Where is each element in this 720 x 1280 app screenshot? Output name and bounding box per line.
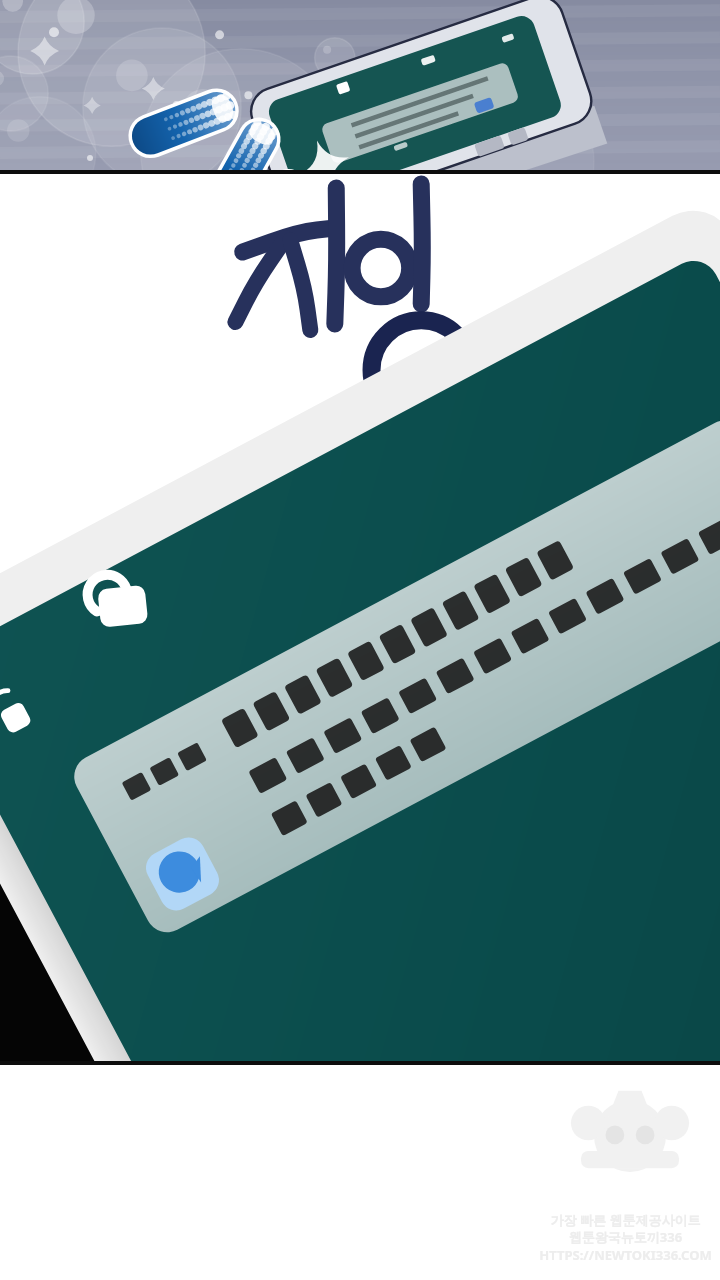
button[interactable]: Comic panel: phone lock screen notificat… [0,629,720,1061]
button[interactable]: Comic panel: phone buzzing [0,0,720,170]
staticText: 가장 빠른 웹툰제공사이트 웹툰왕국뉴토끼336 HTTPS://NEWTOKI… [539,1211,712,1264]
